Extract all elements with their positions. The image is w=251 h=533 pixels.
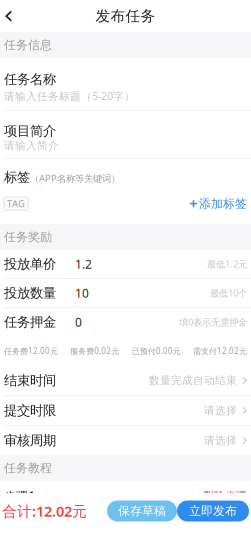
button[interactable]: Back: [0, 0, 28, 32]
staticText: 填0表示无需押金: [179, 316, 247, 328]
button[interactable]: 审核周期: [0, 426, 251, 455]
staticText: 任务名称: [4, 71, 56, 87]
staticText: 标签: [4, 169, 30, 185]
staticText: 投放单价: [4, 256, 56, 272]
staticText: 已预付0.00元: [132, 346, 181, 356]
staticText: 任务费12.00元: [4, 346, 58, 356]
button[interactable]: 结束时间: [0, 366, 251, 395]
staticText: 提交时限: [4, 402, 56, 419]
staticText: 合计:12.02元: [2, 501, 87, 521]
staticText: 数量完成自动结束: [149, 374, 237, 387]
staticText: （APP名称等关键词）: [30, 172, 120, 184]
staticText: 保存草稿: [118, 504, 166, 518]
staticText: 审核周期: [4, 432, 56, 449]
staticText: 1.2: [75, 256, 92, 272]
staticText: 10: [75, 285, 89, 301]
button[interactable]: 删除步骤: [192, 489, 247, 502]
staticText: 项目简介: [4, 123, 56, 139]
staticText: 任务教程: [4, 461, 52, 475]
staticText: 请选择: [204, 434, 237, 447]
staticText: 0: [75, 314, 82, 330]
staticText: 任务押金: [4, 314, 56, 330]
button[interactable]: 提交时限: [0, 396, 251, 425]
button[interactable]: 保存草稿: [107, 500, 177, 521]
staticText: 最低10个: [210, 287, 247, 299]
button[interactable]: 立即发布: [177, 500, 249, 521]
staticText: 添加标签: [199, 196, 247, 211]
staticText: TAG: [7, 197, 25, 210]
staticText: 任务信息: [4, 38, 52, 52]
staticText: 发布任务: [95, 7, 155, 25]
button[interactable]: 添加标签: [190, 193, 247, 214]
staticText: 步骤1: [4, 488, 35, 504]
staticText: 需支付12.02元: [193, 346, 247, 356]
staticText: 服务费0.02元: [70, 346, 119, 356]
staticText: 任务奖励: [4, 230, 52, 244]
staticText: 最低1.2元: [207, 258, 247, 270]
staticText: 删除步骤: [203, 489, 247, 502]
staticText: 请输入任务标题（5-20字）: [4, 89, 135, 103]
staticText: 请选择: [204, 404, 237, 417]
staticText: 投放数量: [4, 285, 56, 301]
staticText: 请输入简介: [4, 139, 59, 152]
staticText: 立即发布: [189, 504, 237, 518]
staticText: 结束时间: [4, 372, 56, 389]
